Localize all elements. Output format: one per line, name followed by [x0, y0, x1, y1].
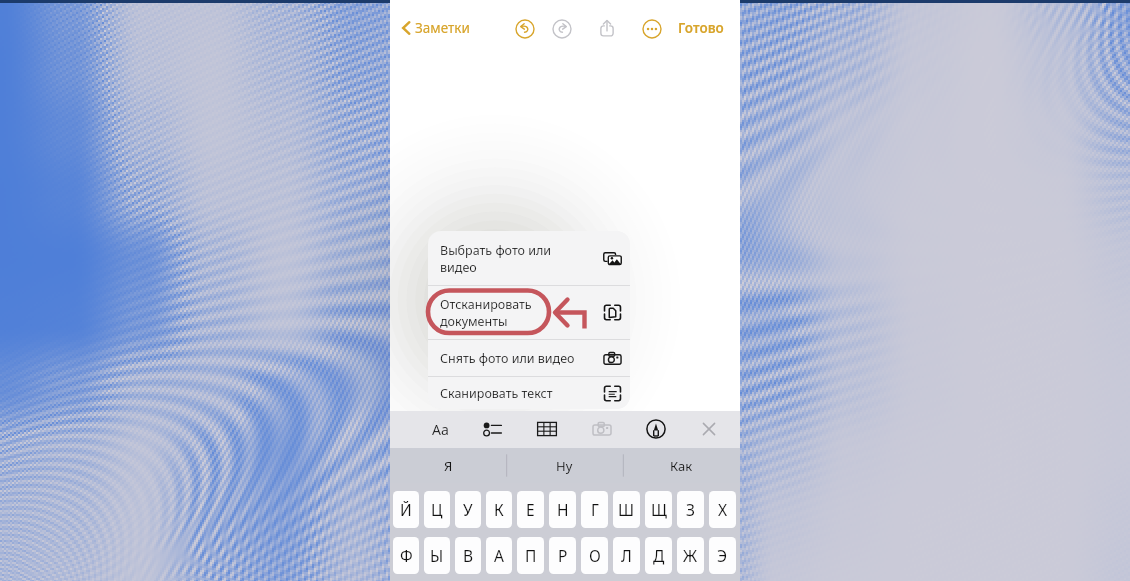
- staticText: Ц: [431, 499, 443, 520]
- button[interactable]: Markup: [643, 416, 669, 442]
- staticText: Д: [653, 545, 665, 566]
- button[interactable]: Я: [390, 448, 506, 483]
- button[interactable]: Р: [549, 537, 576, 574]
- button[interactable]: Н: [549, 491, 576, 528]
- staticText: Э: [717, 545, 728, 566]
- button[interactable]: Е: [517, 491, 544, 528]
- staticText: Выбрать фото или видео: [440, 242, 586, 275]
- button[interactable]: Готово: [678, 19, 724, 37]
- button[interactable]: Г: [581, 491, 608, 528]
- staticText: Я: [444, 457, 453, 475]
- staticText: Н: [557, 499, 569, 520]
- button[interactable]: Й: [393, 491, 419, 528]
- staticText: Готово: [678, 19, 724, 37]
- button[interactable]: Щ: [645, 491, 672, 528]
- button[interactable]: А: [486, 537, 512, 574]
- button[interactable]: О: [581, 537, 608, 574]
- staticText: Й: [400, 499, 412, 520]
- button[interactable]: Undo: [514, 18, 536, 40]
- staticText: К: [494, 499, 504, 520]
- button[interactable]: К: [486, 491, 512, 528]
- button[interactable]: Снять фото или видео: [428, 340, 630, 376]
- button[interactable]: Э: [709, 537, 736, 574]
- staticText: Ф: [400, 545, 413, 566]
- button[interactable]: Как: [623, 448, 740, 483]
- staticText: Aa: [432, 420, 449, 439]
- button[interactable]: Table: [534, 416, 560, 442]
- button[interactable]: Aa: [426, 417, 454, 441]
- button[interactable]: Checklist: [480, 416, 506, 442]
- button[interactable]: Отсканировать документы: [428, 286, 630, 339]
- button[interactable]: Л: [613, 537, 640, 574]
- button[interactable]: Ну: [506, 448, 623, 483]
- staticText: У: [463, 499, 473, 520]
- button[interactable]: У: [455, 491, 481, 528]
- staticText: Р: [558, 545, 568, 566]
- button[interactable]: Сканировать текст: [428, 377, 630, 409]
- button[interactable]: Ц: [424, 491, 450, 528]
- button[interactable]: Выбрать фото или видео: [428, 231, 630, 285]
- button[interactable]: Redo: [551, 18, 573, 40]
- staticText: Заметки: [415, 19, 470, 37]
- button[interactable]: Share: [596, 17, 618, 39]
- staticText: Ы: [430, 545, 444, 566]
- staticText: Е: [526, 499, 535, 520]
- staticText: Снять фото или видео: [440, 350, 575, 367]
- staticText: Отсканировать документы: [440, 296, 586, 329]
- button[interactable]: Camera: [589, 416, 615, 442]
- staticText: П: [525, 545, 537, 566]
- button[interactable]: Д: [645, 537, 672, 574]
- staticText: Ну: [556, 457, 573, 475]
- staticText: А: [494, 545, 504, 566]
- staticText: Г: [591, 499, 599, 520]
- staticText: Как: [670, 457, 693, 475]
- button[interactable]: Close: [696, 416, 722, 442]
- staticText: З: [686, 499, 695, 520]
- button[interactable]: Ж: [677, 537, 704, 574]
- staticText: Х: [718, 499, 728, 520]
- staticText: Л: [621, 545, 632, 566]
- staticText: О: [589, 545, 601, 566]
- button[interactable]: З: [677, 491, 704, 528]
- button[interactable]: Х: [709, 491, 736, 528]
- button[interactable]: В: [455, 537, 481, 574]
- staticText: Щ: [651, 499, 667, 520]
- staticText: Ж: [683, 545, 698, 566]
- button[interactable]: П: [517, 537, 544, 574]
- button[interactable]: Ш: [613, 491, 640, 528]
- staticText: В: [463, 545, 474, 566]
- button[interactable]: More: [641, 18, 663, 40]
- button[interactable]: Ы: [424, 537, 450, 574]
- staticText: Сканировать текст: [440, 385, 553, 402]
- button[interactable]: Заметки: [400, 19, 470, 37]
- staticText: Ш: [618, 499, 635, 520]
- button[interactable]: Ф: [393, 537, 419, 574]
